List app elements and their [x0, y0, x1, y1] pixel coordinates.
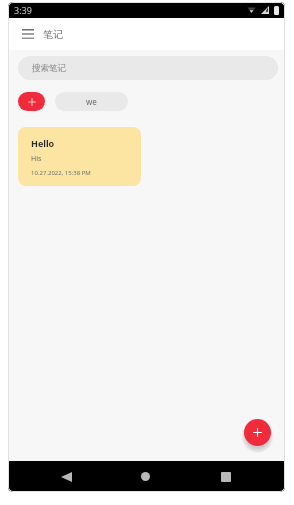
- button[interactable]: 搜索笔记: [18, 56, 278, 80]
- button[interactable]: Add tag: [18, 92, 45, 111]
- staticText: 笔记: [43, 28, 63, 41]
- button[interactable]: Recents: [213, 461, 238, 492]
- staticText: 3:39: [14, 4, 32, 16]
- button[interactable]: Hello: [18, 127, 141, 186]
- staticText: His: [31, 154, 42, 164]
- button[interactable]: we: [55, 92, 128, 111]
- button[interactable]: Add note: [244, 419, 271, 446]
- button[interactable]: Home: [133, 461, 158, 492]
- button[interactable]: Menu: [15, 21, 41, 47]
- button[interactable]: Back: [54, 461, 79, 492]
- staticText: Hello: [31, 137, 55, 149]
- staticText: we: [86, 96, 97, 107]
- staticText: 10.27.2022, 15:38 PM: [31, 169, 91, 177]
- staticText: 搜索笔记: [32, 63, 66, 74]
